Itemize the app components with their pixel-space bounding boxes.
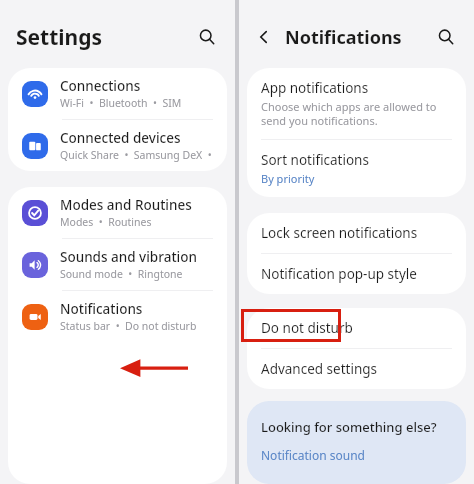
staticText: Notifications xyxy=(60,300,143,318)
button[interactable]: Do not disturb xyxy=(247,308,466,348)
button[interactable]: Sort notifications xyxy=(247,140,466,197)
staticText: Wi-Fi • Bluetooth • SIM manager xyxy=(60,96,215,110)
staticText: Lock screen notifications xyxy=(261,224,418,242)
staticText: Sort notifications xyxy=(261,151,369,169)
button[interactable]: Notification sound xyxy=(261,447,365,463)
staticText: Sounds and vibration xyxy=(60,248,197,266)
button[interactable]: Notifications xyxy=(8,291,227,342)
button[interactable]: Search xyxy=(191,21,223,53)
staticText: Advanced settings xyxy=(261,360,378,378)
button[interactable]: Connected devices xyxy=(8,120,227,171)
button[interactable]: Back xyxy=(249,22,279,52)
staticText: App notifications xyxy=(261,79,369,97)
staticText: Settings xyxy=(16,23,103,52)
staticText: Notifications xyxy=(285,25,402,50)
button[interactable]: Lock screen notifications xyxy=(247,213,466,253)
button[interactable]: Advanced settings xyxy=(247,349,466,389)
staticText: Connections xyxy=(60,77,141,95)
staticText: Do not disturb xyxy=(261,319,353,337)
button[interactable]: Connections xyxy=(8,68,227,119)
button[interactable]: App notifications xyxy=(247,68,466,139)
staticText: By priority xyxy=(261,171,315,186)
staticText: Modes • Routines xyxy=(60,215,152,229)
button[interactable]: Sounds and vibration xyxy=(8,239,227,290)
staticText: Looking for something else? xyxy=(261,418,437,436)
staticText: Quick Share • Samsung DeX • Android Auto xyxy=(60,148,215,162)
staticText: Choose which apps are allowed to send yo… xyxy=(261,99,450,128)
staticText: Sound mode • Ringtone xyxy=(60,267,183,281)
staticText: Notification pop-up style xyxy=(261,265,417,283)
staticText: Connected devices xyxy=(60,129,181,147)
staticText: Status bar • Do not disturb xyxy=(60,319,197,333)
button[interactable]: Notification pop-up style xyxy=(247,254,466,294)
button[interactable]: Modes and Routines xyxy=(8,187,227,238)
staticText: Modes and Routines xyxy=(60,196,192,214)
button[interactable]: Search xyxy=(430,21,462,53)
staticText: Notification sound xyxy=(261,447,365,463)
